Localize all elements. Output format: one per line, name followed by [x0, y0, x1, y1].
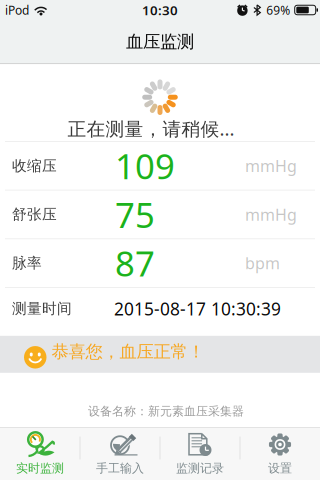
staticText: 测量时间 — [12, 300, 72, 318]
staticText: 恭喜您，血压正常！ — [51, 341, 204, 362]
staticText: mmHg — [245, 155, 297, 176]
staticText: 脉率 — [12, 254, 42, 272]
staticText: 收缩压 — [12, 157, 57, 175]
staticText: bpm — [245, 252, 280, 274]
staticText: 实时监测 — [16, 461, 64, 476]
staticText: 109 — [115, 143, 175, 189]
staticText: 75 — [115, 191, 155, 237]
staticText: 监测记录 — [176, 461, 224, 476]
button[interactable]: 手工输入 — [80, 428, 160, 480]
button[interactable]: 设置 — [240, 428, 320, 480]
staticText: 2015-08-17 10:30:39 — [114, 297, 281, 320]
staticText: mmHg — [245, 204, 297, 225]
staticText: 设置 — [268, 461, 292, 476]
staticText: iPod — [5, 2, 29, 18]
staticText: 正在测量，请稍候... — [67, 116, 234, 141]
button[interactable]: 监测记录 — [160, 428, 240, 480]
staticText: 10:30 — [142, 1, 178, 19]
staticText: 69% — [266, 2, 290, 18]
staticText: 87 — [115, 240, 155, 286]
staticText: 手工输入 — [96, 461, 144, 476]
button[interactable]: 实时监测 — [0, 428, 80, 480]
staticText: 舒张压 — [12, 205, 57, 223]
staticText: 血压监测 — [126, 31, 194, 52]
staticText: 设备名称：新元素血压采集器 — [88, 404, 244, 418]
